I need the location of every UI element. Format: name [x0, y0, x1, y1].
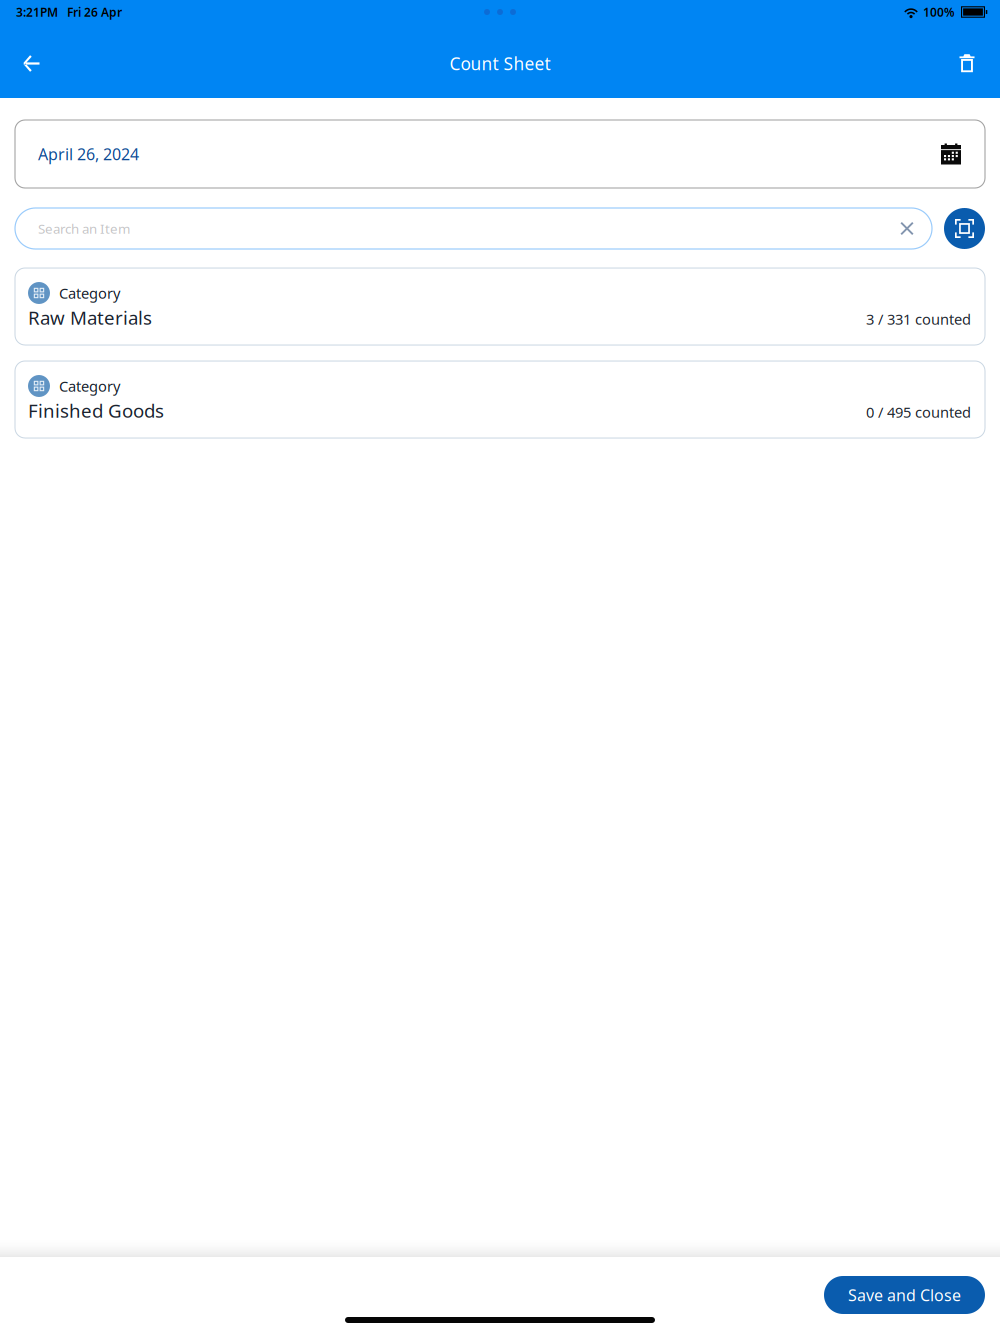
staticText: Fri 26 Apr: [67, 4, 122, 20]
staticText: 3:21PM: [16, 4, 58, 20]
staticText: Count Sheet: [449, 52, 550, 75]
button[interactable]: Category: [15, 268, 985, 345]
button[interactable]: Delete count sheet: [934, 24, 1000, 98]
button[interactable]: Category: [15, 361, 985, 438]
button[interactable]: April 26, 2024: [15, 120, 985, 188]
button[interactable]: Back: [0, 24, 62, 98]
staticText: Category: [59, 283, 120, 303]
staticText: 100%: [923, 4, 955, 20]
staticText: Category: [59, 376, 120, 396]
staticText: Search an Item: [38, 220, 130, 237]
staticText: 0 / 495 counted: [866, 402, 971, 422]
button[interactable]: Save and Close: [824, 1276, 985, 1314]
staticText: 3 / 331 counted: [866, 309, 971, 329]
staticText: Finished Goods: [28, 398, 164, 423]
staticText: Save and Close: [848, 1284, 961, 1306]
button[interactable]: Clear search: [888, 208, 926, 249]
staticText: April 26, 2024: [38, 143, 139, 165]
button[interactable]: Scan item: [944, 208, 985, 249]
staticText: Raw Materials: [28, 305, 152, 330]
